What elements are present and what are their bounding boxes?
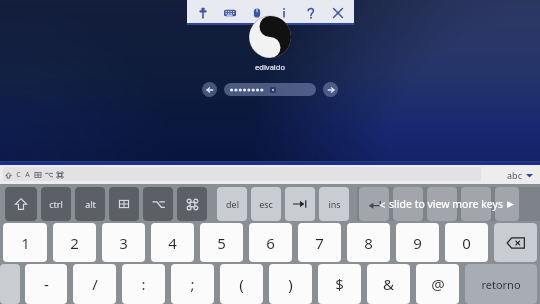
button[interactable]: 9: [396, 223, 439, 262]
button[interactable]: ;: [171, 264, 214, 304]
staticText: $: [335, 274, 344, 294]
button[interactable]: [109, 187, 139, 221]
button[interactable]: @: [416, 264, 459, 304]
staticText: del: [226, 198, 239, 210]
button[interactable]: [495, 187, 519, 221]
staticText: ins: [328, 198, 341, 210]
button[interactable]: (: [220, 264, 263, 304]
staticText: edivaldo: [255, 62, 285, 72]
button[interactable]: [285, 187, 315, 221]
staticText: 2: [70, 233, 79, 253]
staticText: 4: [168, 233, 177, 253]
button[interactable]: $: [318, 264, 361, 304]
button[interactable]: [5, 187, 37, 221]
button[interactable]: [143, 187, 173, 221]
staticText: 6: [266, 233, 275, 253]
staticText: (: [239, 274, 244, 294]
staticText: 3: [119, 233, 128, 253]
button[interactable]: Mouse: [246, 2, 268, 23]
staticText: retorno: [481, 277, 521, 292]
button[interactable]: Pin window: [192, 2, 214, 23]
button[interactable]: ctrl: [41, 187, 71, 221]
staticText: 0: [462, 233, 471, 253]
staticText: 7: [315, 233, 324, 253]
staticText: /: [92, 274, 98, 294]
button[interactable]: 0: [445, 223, 488, 262]
button[interactable]: 3: [102, 223, 145, 262]
staticText: :: [141, 274, 146, 294]
staticText: -: [44, 274, 49, 294]
staticText: &: [383, 274, 394, 294]
button[interactable]: [359, 187, 389, 221]
staticText: 1: [21, 233, 30, 253]
staticText: A: [25, 170, 30, 180]
button[interactable]: [0, 264, 20, 304]
staticText: 5: [217, 233, 226, 253]
staticText: C: [16, 170, 21, 180]
button[interactable]: retorno: [465, 264, 537, 304]
staticText: 9: [413, 233, 422, 253]
button[interactable]: alt: [75, 187, 105, 221]
button[interactable]: abc: [507, 169, 533, 181]
button[interactable]: ): [269, 264, 312, 304]
button[interactable]: [177, 187, 207, 221]
button[interactable]: 8: [347, 223, 390, 262]
staticText: @: [431, 274, 445, 294]
button[interactable]: Close: [327, 2, 349, 23]
staticText: 8: [364, 233, 373, 253]
other: Layout options: [526, 172, 533, 179]
button[interactable]: -: [25, 264, 67, 304]
staticText: ctrl: [49, 198, 63, 210]
button[interactable]: [427, 187, 457, 221]
button[interactable]: Log in: [323, 82, 338, 97]
button[interactable]: 7: [298, 223, 341, 262]
button[interactable]: 2: [53, 223, 96, 262]
staticText: esc: [259, 198, 273, 210]
button[interactable]: 5: [200, 223, 243, 262]
button[interactable]: 1: [3, 223, 47, 262]
button[interactable]: [461, 187, 491, 221]
staticText: slide to view more keys: [389, 197, 503, 211]
button[interactable]: [224, 83, 316, 96]
button[interactable]: &: [367, 264, 410, 304]
button[interactable]: Backspace: [494, 223, 537, 262]
button[interactable]: /: [73, 264, 116, 304]
button[interactable]: Information: [273, 2, 295, 23]
button[interactable]: ins: [319, 187, 349, 221]
staticText: ): [288, 274, 293, 294]
button[interactable]: Help: [300, 2, 322, 23]
staticText: ;: [190, 274, 195, 294]
button[interactable]: Previous user: [202, 82, 217, 97]
staticText: abc: [507, 169, 522, 181]
button[interactable]: 6: [249, 223, 292, 262]
button[interactable]: 4: [151, 223, 194, 262]
staticText: <: [379, 197, 386, 212]
button[interactable]: [393, 187, 423, 221]
staticText: alt: [85, 198, 96, 210]
button[interactable]: del: [217, 187, 247, 221]
button[interactable]: esc: [251, 187, 281, 221]
button[interactable]: :: [122, 264, 165, 304]
button[interactable]: Keyboard: [219, 2, 241, 23]
